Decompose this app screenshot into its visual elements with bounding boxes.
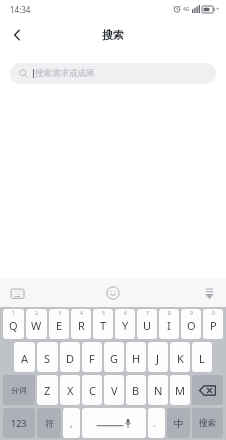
staticText: , xyxy=(70,417,73,429)
staticText: H xyxy=(132,351,141,366)
staticText: I xyxy=(167,318,171,333)
staticText: 123 xyxy=(11,417,27,429)
staticText: 1 xyxy=(12,310,15,317)
staticText: E xyxy=(56,318,63,333)
button[interactable]: 中 xyxy=(167,408,190,438)
staticText: F xyxy=(89,351,95,366)
staticText: L xyxy=(199,351,205,366)
staticText: 9 xyxy=(190,310,193,317)
staticText: 搜索 xyxy=(199,418,216,429)
button[interactable]: 搜索需求或成果 xyxy=(10,63,216,84)
button[interactable]: C xyxy=(82,375,102,405)
staticText: C xyxy=(89,383,96,398)
button[interactable]: 2 xyxy=(26,309,47,339)
staticText: P xyxy=(210,318,217,333)
staticText: 8 xyxy=(168,310,171,317)
button[interactable]: 3 xyxy=(49,309,69,339)
button[interactable]: J xyxy=(148,342,168,372)
button[interactable]: N xyxy=(148,375,168,405)
button[interactable]: H xyxy=(126,342,146,372)
staticText: N xyxy=(154,383,163,398)
button[interactable]: 4 xyxy=(71,309,91,339)
staticText: J xyxy=(156,351,160,366)
staticText: T xyxy=(100,318,107,333)
staticText: 。 xyxy=(153,419,160,428)
button[interactable]: M xyxy=(170,375,190,405)
button[interactable]: G xyxy=(104,342,124,372)
button[interactable]: B xyxy=(126,375,146,405)
button[interactable]: Emoji xyxy=(103,283,123,303)
button[interactable]: L xyxy=(192,342,212,372)
button[interactable]: 9 xyxy=(181,309,201,339)
button[interactable]: 搜索 xyxy=(192,408,223,438)
staticText: 搜索需求或成果 xyxy=(35,68,95,79)
button[interactable]: K xyxy=(170,342,190,372)
staticText: B xyxy=(132,383,140,398)
button[interactable]: X xyxy=(60,375,80,405)
button[interactable]: 1 xyxy=(3,309,24,339)
staticText: 14:34 xyxy=(10,4,31,15)
staticText: 中 xyxy=(174,417,184,430)
staticText: G xyxy=(110,351,119,366)
staticText: 4G xyxy=(183,6,190,13)
staticText: U xyxy=(143,318,152,333)
staticText: M xyxy=(175,383,185,398)
staticText: 2 xyxy=(35,310,38,317)
staticText: 0 xyxy=(212,310,215,317)
staticText: 4 xyxy=(80,310,83,317)
button[interactable]: 符 xyxy=(37,408,61,438)
staticText: 7 xyxy=(146,310,149,317)
button[interactable]: 8 xyxy=(159,309,179,339)
staticText: V xyxy=(111,383,118,398)
button[interactable]: 123 xyxy=(3,408,35,438)
staticText: O xyxy=(187,318,196,333)
button[interactable]: 7 xyxy=(137,309,157,339)
button[interactable]: S xyxy=(37,342,58,372)
staticText: 5 xyxy=(102,310,105,317)
staticText: 搜索 xyxy=(102,28,124,42)
button[interactable]: F xyxy=(82,342,102,372)
button[interactable]: Keyboard settings xyxy=(7,283,27,303)
staticText: Q xyxy=(9,318,18,333)
button[interactable]: Backspace xyxy=(192,375,223,405)
button[interactable]: 分词 xyxy=(3,375,35,405)
staticText: + xyxy=(216,5,220,13)
staticText: S xyxy=(44,351,51,366)
button[interactable]: 0 xyxy=(203,309,223,339)
button[interactable]: Hide keyboard xyxy=(199,283,219,303)
button[interactable]: 6 xyxy=(115,309,135,339)
button[interactable]: Z xyxy=(37,375,58,405)
button[interactable]: 。 xyxy=(148,408,165,438)
button[interactable]: , xyxy=(63,408,80,438)
staticText: Z xyxy=(44,383,51,398)
staticText: 3 xyxy=(58,310,61,317)
staticText: 分词 xyxy=(11,385,27,395)
staticText: R xyxy=(78,318,85,333)
staticText: A xyxy=(21,351,29,366)
button[interactable]: V xyxy=(104,375,124,405)
button[interactable]: D xyxy=(60,342,80,372)
staticText: 符 xyxy=(45,418,54,429)
staticText: X xyxy=(67,383,74,398)
button[interactable]: Space xyxy=(82,408,146,438)
staticText: D xyxy=(66,351,75,366)
staticText: K xyxy=(177,351,184,366)
staticText: 6 xyxy=(124,310,127,317)
button[interactable]: Back xyxy=(0,18,34,52)
button[interactable]: A xyxy=(14,342,35,372)
staticText: Y xyxy=(122,318,129,333)
staticText: W xyxy=(31,318,42,333)
button[interactable]: 5 xyxy=(93,309,113,339)
